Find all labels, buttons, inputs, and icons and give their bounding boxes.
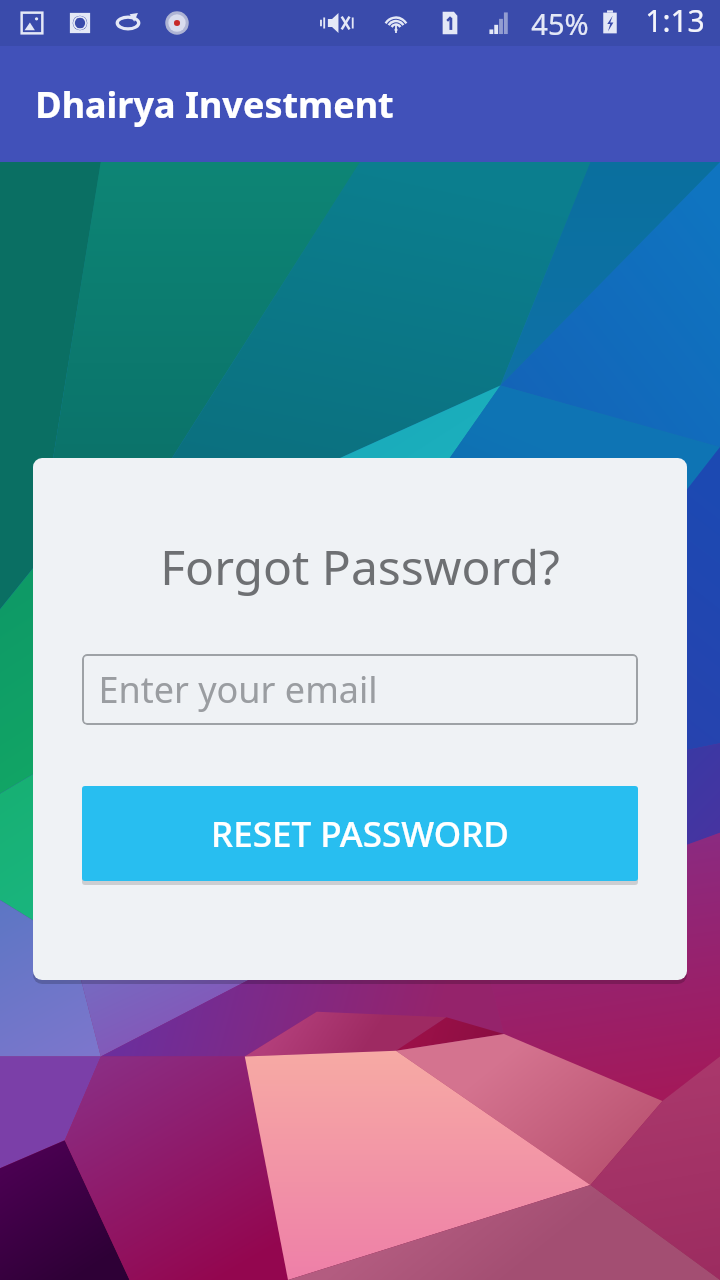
staticText: Forgot Password? (160, 534, 560, 599)
button[interactable]: Dhairya Investment (0, 46, 720, 162)
staticText: RESET PASSWORD (211, 810, 509, 858)
button[interactable]: RESET PASSWORD (82, 786, 638, 881)
staticText: 45% (531, 4, 589, 43)
staticText: Dhairya Investment (35, 80, 394, 129)
staticText: 1:13 PM (630, 0, 720, 46)
button[interactable]: Enter your email (82, 654, 638, 725)
staticText: Enter your email (98, 665, 378, 714)
